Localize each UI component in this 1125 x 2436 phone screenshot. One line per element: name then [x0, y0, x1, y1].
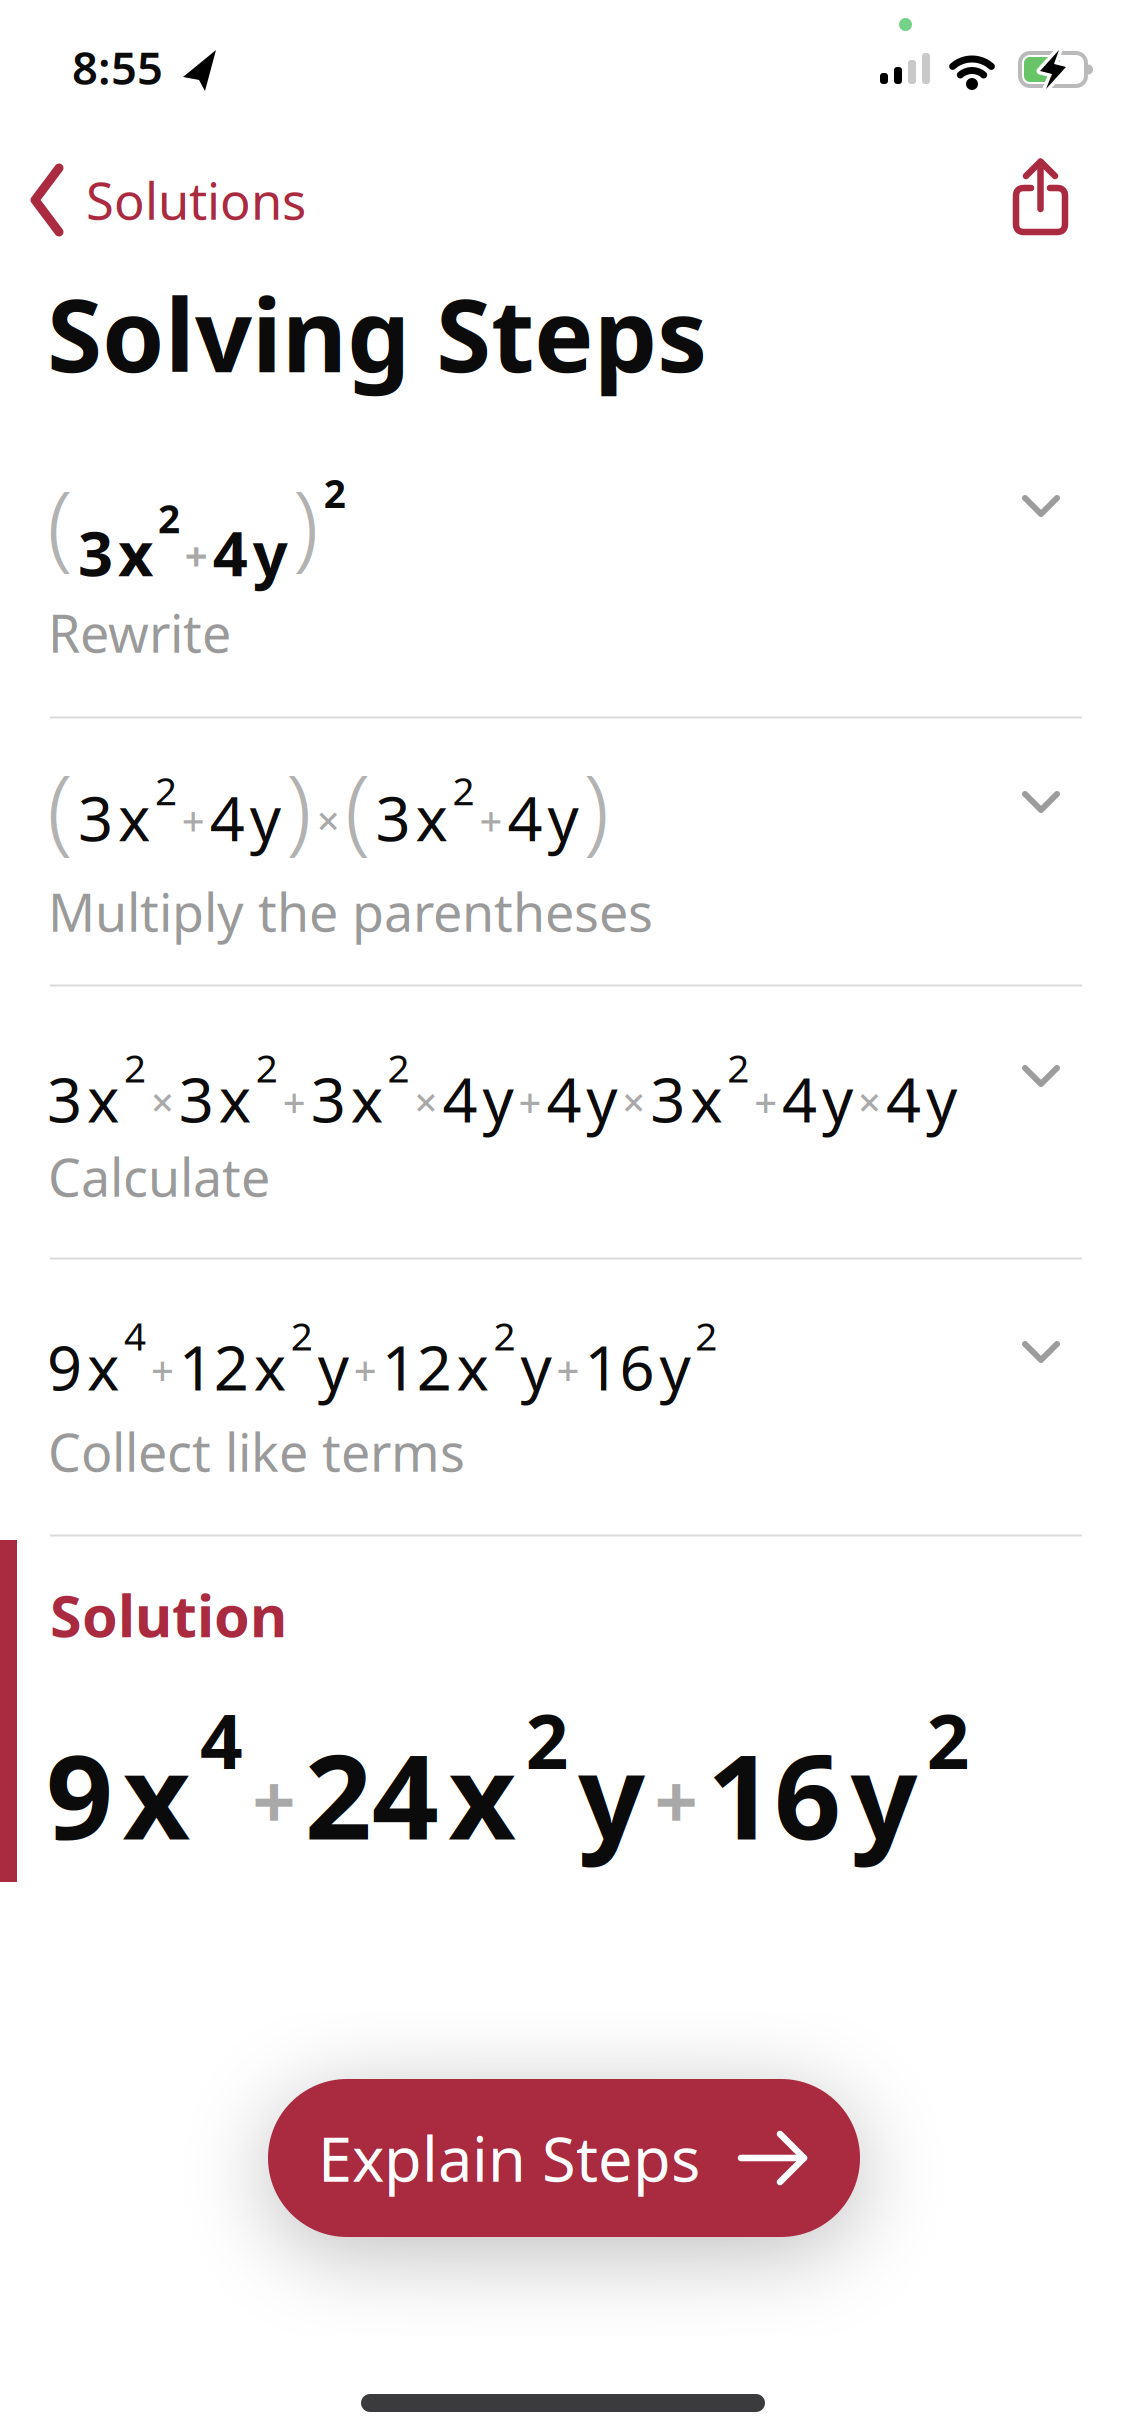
staticText: 2 [727, 1042, 749, 1093]
staticText: ( [47, 745, 73, 869]
staticText: y [659, 1326, 690, 1407]
button[interactable]: ( [0, 430, 1125, 717]
staticText: Solution [50, 1577, 287, 1653]
button[interactable]: Back to Solutions [30, 163, 306, 237]
staticText: × [151, 1075, 174, 1128]
staticText: 9 [47, 1326, 82, 1407]
staticText: 3 [179, 1058, 214, 1139]
staticText: 9 [46, 1716, 113, 1872]
staticText: y [822, 1058, 853, 1139]
button[interactable]: ( [0, 717, 1125, 985]
staticText: 4 [442, 1058, 477, 1139]
staticText: ) [583, 745, 609, 869]
staticText: y [926, 1058, 957, 1139]
staticText: 3 [47, 1058, 82, 1139]
staticText: 2 [388, 1042, 410, 1093]
staticText: x [87, 1326, 119, 1407]
staticText: 16 [707, 1716, 841, 1872]
staticText: y [850, 1716, 917, 1872]
staticText: 3 [650, 1058, 685, 1139]
staticText: ) [286, 745, 312, 869]
staticText: × [622, 1075, 645, 1128]
staticText: ( [345, 745, 371, 869]
staticText: ( [47, 461, 73, 585]
staticText: 2 [124, 1042, 146, 1093]
staticText: + [556, 1343, 579, 1396]
staticText: 2 [155, 764, 177, 816]
staticText: 2 [291, 1310, 313, 1361]
staticText: 4 [507, 777, 542, 858]
staticText: 3 [78, 777, 113, 858]
staticText: 3 [376, 777, 411, 858]
staticText: 4 [124, 1310, 146, 1361]
staticText: y [318, 1326, 349, 1407]
staticText: ) [293, 461, 319, 585]
staticText: Explain Steps [318, 2117, 700, 2199]
staticText: 2 [256, 1042, 278, 1093]
staticText: Solutions [86, 166, 306, 234]
staticText: x [416, 777, 448, 858]
staticText: x [118, 512, 153, 593]
staticText: 2 [526, 1690, 569, 1790]
button[interactable]: 9 [0, 1258, 1125, 1535]
staticText: 12 [179, 1326, 249, 1407]
staticText: Solving Steps [47, 267, 707, 400]
staticText: + [151, 1343, 174, 1396]
staticText: Rewrite [48, 598, 231, 667]
staticText: y [253, 512, 288, 593]
staticText: 2 [927, 1690, 970, 1790]
staticText: x [690, 1058, 722, 1139]
button[interactable]: Explain Steps [268, 2079, 860, 2237]
staticText: 2 [158, 492, 180, 544]
staticText: y [586, 1058, 617, 1139]
button[interactable]: 3 [0, 985, 1125, 1258]
staticText: 24 [305, 1716, 439, 1872]
staticText: 2 [324, 467, 346, 519]
staticText: × [415, 1075, 438, 1128]
staticText: x [351, 1058, 383, 1139]
staticText: + [283, 1075, 306, 1128]
staticText: y [482, 1058, 513, 1139]
staticText: y [250, 777, 281, 858]
staticText: 12 [382, 1326, 452, 1407]
staticText: x [254, 1326, 286, 1407]
staticText: 2 [452, 764, 474, 816]
staticText: x [87, 1058, 119, 1139]
staticText: × [858, 1075, 881, 1128]
staticText: x [219, 1058, 251, 1139]
staticText: x [457, 1326, 489, 1407]
staticText: 3 [311, 1058, 346, 1139]
staticText: y [578, 1716, 645, 1872]
staticText: Multiply the parentheses [48, 877, 653, 946]
staticText: 4 [210, 777, 245, 858]
staticText: + [479, 793, 502, 847]
staticText: x [448, 1716, 516, 1872]
staticText: + [754, 1075, 777, 1128]
staticText: 4 [213, 512, 248, 593]
staticText: × [317, 793, 340, 847]
staticText: 2 [695, 1310, 717, 1361]
staticText: 16 [584, 1326, 654, 1407]
staticText: x [122, 1716, 190, 1872]
staticText: Calculate [48, 1142, 270, 1211]
staticText: 4 [200, 1690, 243, 1790]
staticText: 4 [546, 1058, 581, 1139]
staticText: 2 [494, 1310, 516, 1361]
staticText: + [182, 793, 205, 847]
staticText: 4 [782, 1058, 817, 1139]
staticText: + [185, 528, 208, 582]
staticText: y [520, 1326, 551, 1407]
button[interactable]: Share [1013, 157, 1071, 237]
staticText: Collect like terms [48, 1417, 465, 1486]
staticText: y [547, 777, 578, 858]
staticText: 4 [886, 1058, 921, 1139]
staticText: + [252, 1749, 295, 1850]
staticText: x [118, 777, 150, 858]
staticText: + [654, 1749, 697, 1850]
staticText: + [354, 1343, 377, 1396]
staticText: 8:55 [72, 37, 163, 97]
staticText: 3 [78, 512, 113, 593]
staticText: + [518, 1075, 541, 1128]
